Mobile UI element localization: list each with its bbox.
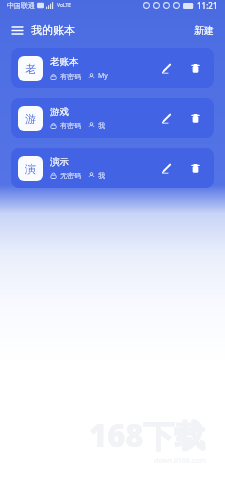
staticText: 有密码 bbox=[60, 72, 81, 81]
staticText: 新建 bbox=[194, 24, 214, 37]
button[interactable]: Edit bbox=[155, 107, 177, 129]
staticText: 老 bbox=[25, 62, 36, 76]
button[interactable]: Menu bbox=[8, 21, 26, 39]
staticText: My bbox=[98, 71, 108, 81]
staticText: 我 bbox=[98, 171, 105, 180]
button[interactable]: 演 bbox=[11, 148, 214, 188]
staticText: 有密码 bbox=[60, 121, 81, 130]
staticText: 我的账本 bbox=[31, 23, 75, 37]
button[interactable]: 新建 bbox=[191, 22, 217, 39]
staticText: 168下载 bbox=[89, 414, 206, 456]
staticText: 11:21 bbox=[197, 0, 218, 11]
staticText: VoLTE bbox=[57, 2, 72, 9]
button[interactable]: Delete bbox=[184, 107, 206, 129]
staticText: 无密码 bbox=[60, 171, 81, 180]
staticText: 老账本 bbox=[50, 56, 79, 68]
staticText: 我 bbox=[98, 121, 105, 130]
staticText: 游 bbox=[25, 112, 36, 126]
staticText: 演 bbox=[25, 162, 36, 176]
button[interactable]: 老 bbox=[11, 48, 214, 88]
button[interactable]: Edit bbox=[155, 57, 177, 79]
staticText: 演示 bbox=[50, 156, 69, 168]
button[interactable]: 游 bbox=[11, 98, 214, 138]
button[interactable]: Delete bbox=[184, 157, 206, 179]
button[interactable]: Delete bbox=[184, 57, 206, 79]
staticText: 游戏 bbox=[50, 106, 69, 118]
button[interactable]: Edit bbox=[155, 157, 177, 179]
staticText: 中国联通 bbox=[7, 1, 35, 10]
staticText: down.il168.com bbox=[154, 456, 206, 466]
